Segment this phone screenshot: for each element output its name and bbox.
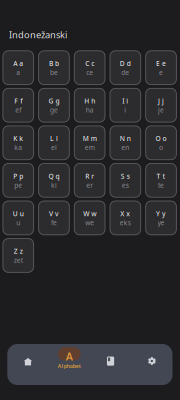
staticText: ha bbox=[86, 105, 94, 114]
staticText: C c bbox=[85, 59, 94, 68]
staticText: ki bbox=[51, 181, 57, 189]
button[interactable]: L l bbox=[39, 126, 69, 160]
staticText: R r bbox=[85, 172, 94, 180]
staticText: L l bbox=[50, 134, 58, 143]
staticText: a bbox=[16, 68, 20, 77]
button[interactable]: D d bbox=[110, 51, 141, 85]
staticText: S s bbox=[121, 172, 130, 180]
staticText: A a bbox=[13, 59, 23, 68]
staticText: J j bbox=[158, 96, 164, 105]
staticText: G g bbox=[48, 96, 59, 105]
button[interactable]: P p bbox=[3, 163, 34, 197]
staticText: zet bbox=[14, 256, 23, 265]
staticText: je bbox=[158, 105, 164, 114]
button[interactable]: A bbox=[49, 344, 90, 385]
staticText: el bbox=[51, 143, 57, 152]
staticText: O o bbox=[156, 134, 167, 143]
staticText: N n bbox=[120, 134, 131, 143]
button[interactable]: A a bbox=[3, 51, 34, 85]
button[interactable]: F f bbox=[3, 88, 34, 122]
button[interactable]: R r bbox=[74, 163, 105, 197]
button[interactable]: T t bbox=[146, 163, 176, 197]
staticText: Q q bbox=[48, 172, 59, 180]
staticText: I i bbox=[122, 96, 128, 105]
staticText: H h bbox=[84, 96, 95, 105]
button[interactable]: S s bbox=[110, 163, 141, 197]
staticText: Y y bbox=[156, 209, 166, 218]
button[interactable]: Q q bbox=[39, 163, 69, 197]
button[interactable]: C c bbox=[74, 51, 105, 85]
button[interactable]: O o bbox=[146, 126, 176, 160]
staticText: ge bbox=[50, 105, 58, 114]
staticText: u bbox=[16, 218, 20, 227]
staticText: B b bbox=[49, 59, 59, 68]
staticText: V v bbox=[49, 209, 59, 218]
staticText: es bbox=[122, 181, 129, 189]
button[interactable]: W w bbox=[74, 201, 105, 235]
staticText: X x bbox=[120, 209, 130, 218]
button[interactable]: X x bbox=[110, 201, 141, 235]
staticText: eks bbox=[120, 218, 131, 227]
staticText: ka bbox=[14, 143, 22, 152]
staticText: M m bbox=[83, 134, 97, 143]
button[interactable]: Y y bbox=[146, 201, 176, 235]
staticText: P p bbox=[13, 172, 23, 180]
button[interactable]: J j bbox=[146, 88, 176, 122]
staticText: em bbox=[85, 143, 95, 152]
staticText: pe bbox=[14, 181, 22, 189]
staticText: te bbox=[158, 181, 164, 189]
staticText: E e bbox=[156, 59, 166, 68]
button[interactable]: V v bbox=[39, 201, 69, 235]
staticText: Z z bbox=[14, 247, 23, 256]
staticText: o bbox=[159, 143, 163, 152]
button[interactable]: G g bbox=[39, 88, 69, 122]
button[interactable]: N n bbox=[110, 126, 141, 160]
staticText: Indonežanski bbox=[9, 28, 67, 41]
staticText: D d bbox=[120, 59, 131, 68]
staticText: U u bbox=[13, 209, 24, 218]
staticText: i bbox=[124, 105, 126, 114]
button[interactable]: Flashcards bbox=[90, 344, 131, 385]
staticText: ye bbox=[158, 218, 165, 227]
staticText: de bbox=[121, 68, 129, 77]
staticText: ef bbox=[15, 105, 21, 114]
button[interactable]: E e bbox=[146, 51, 176, 85]
staticText: e bbox=[159, 68, 163, 77]
staticText: A bbox=[66, 349, 73, 364]
staticText: fe bbox=[51, 218, 57, 227]
staticText: K k bbox=[13, 134, 23, 143]
staticText: we bbox=[85, 218, 94, 227]
staticText: W w bbox=[83, 209, 96, 218]
button[interactable]: B b bbox=[39, 51, 69, 85]
staticText: T t bbox=[157, 172, 166, 180]
button[interactable]: H h bbox=[74, 88, 105, 122]
button[interactable]: Home bbox=[7, 344, 49, 385]
staticText: Alphabet bbox=[58, 362, 81, 370]
button[interactable]: I i bbox=[110, 88, 141, 122]
staticText: F f bbox=[14, 96, 22, 105]
button[interactable]: K k bbox=[3, 126, 34, 160]
button[interactable]: U u bbox=[3, 201, 34, 235]
staticText: en bbox=[121, 143, 129, 152]
button[interactable]: M m bbox=[74, 126, 105, 160]
button[interactable]: Settings bbox=[131, 344, 172, 385]
staticText: ce bbox=[86, 68, 93, 77]
staticText: er bbox=[86, 181, 93, 189]
staticText: be bbox=[50, 68, 58, 77]
button[interactable]: Z z bbox=[3, 239, 34, 272]
